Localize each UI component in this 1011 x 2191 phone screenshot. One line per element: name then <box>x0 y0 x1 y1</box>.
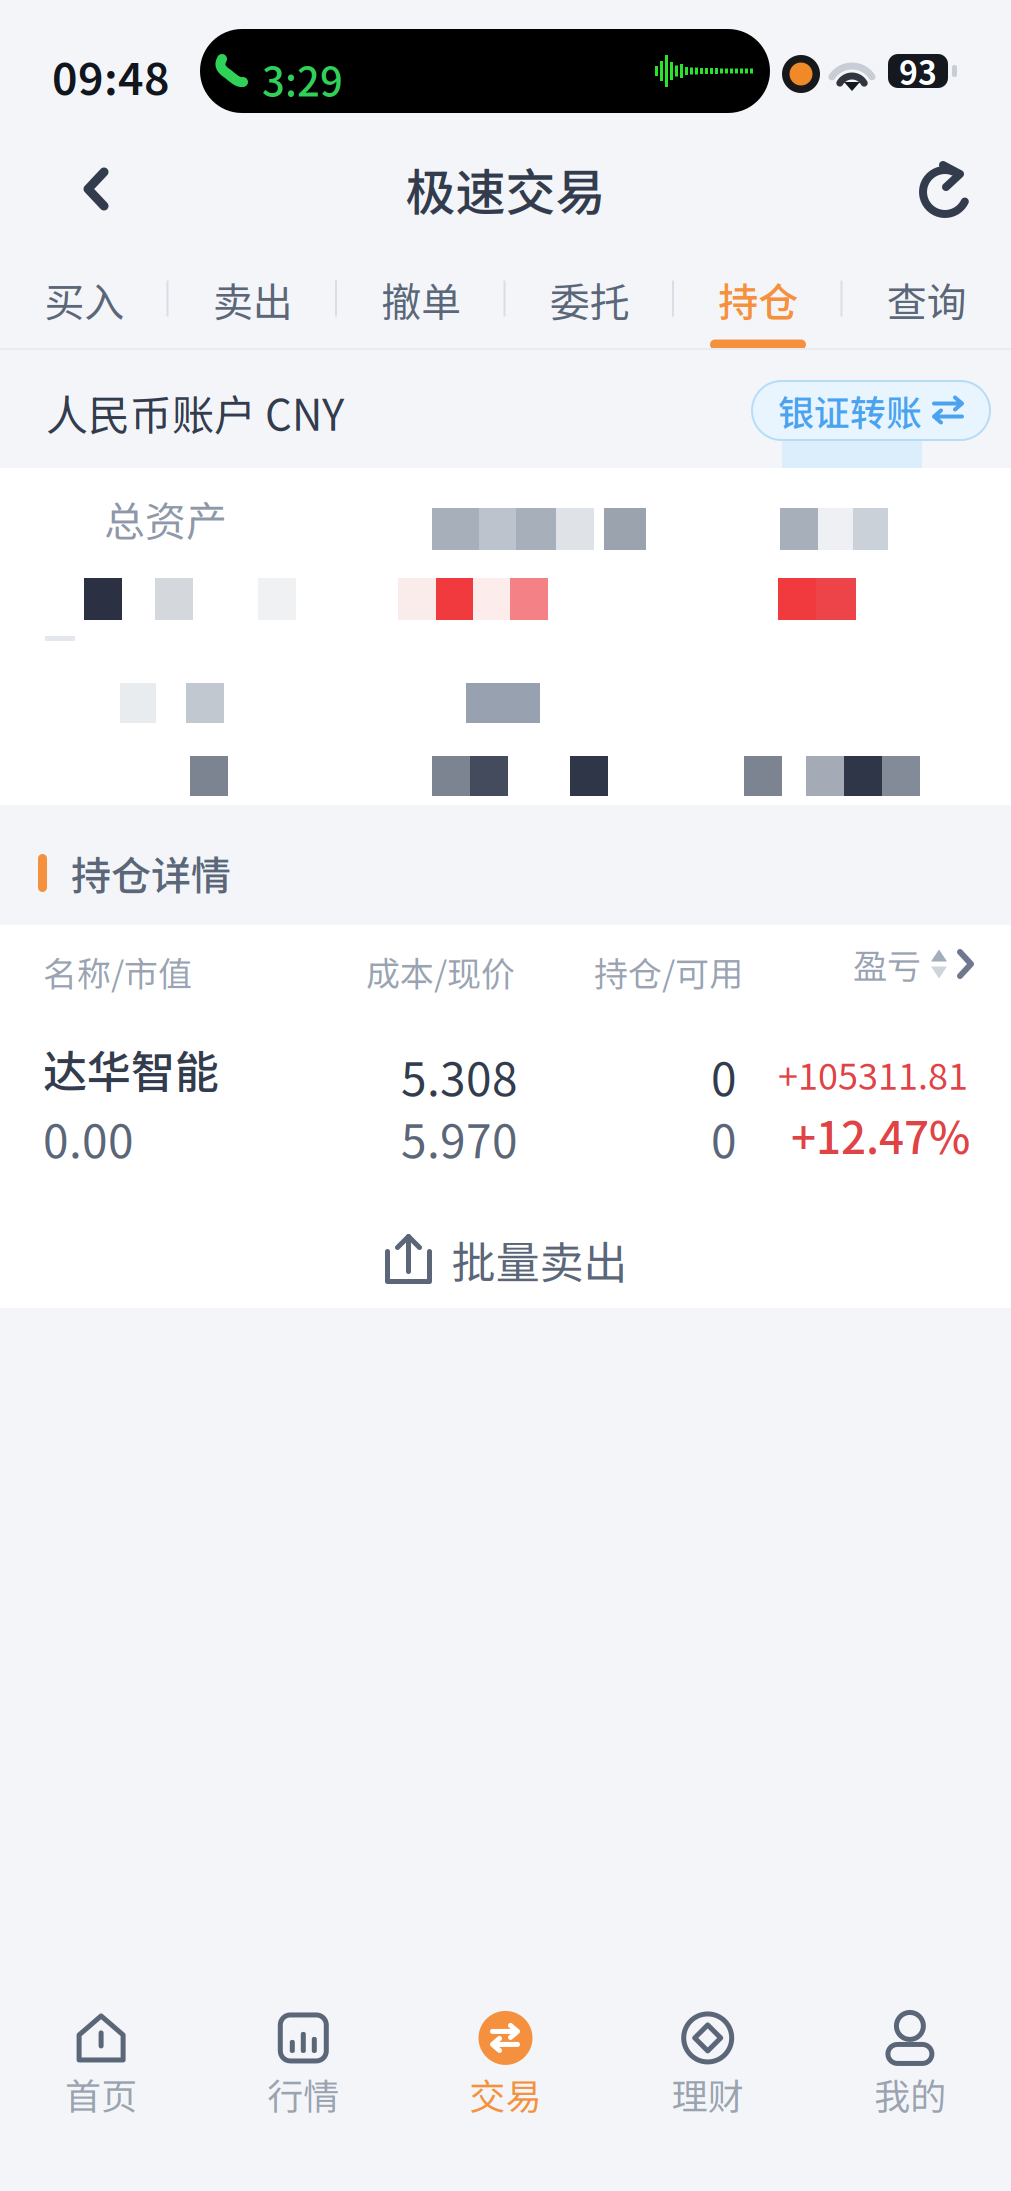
staticText: 名称/市值 <box>43 947 192 996</box>
staticText: 卖出 <box>213 270 293 328</box>
button[interactable]: 撤单 <box>337 257 505 339</box>
staticText: 买入 <box>44 270 124 328</box>
staticText: 总资产 <box>104 489 227 548</box>
staticText: 极速交易 <box>405 153 605 225</box>
button[interactable]: 买入 <box>0 257 168 339</box>
staticText: 5.970 <box>401 1105 518 1172</box>
staticText: 0 <box>711 1105 737 1172</box>
staticText: 交易 <box>469 2068 541 2120</box>
button[interactable]: 银证转账 <box>752 381 990 440</box>
staticText: 我的 <box>874 2068 946 2120</box>
button[interactable]: 行情 <box>202 1989 404 2141</box>
button[interactable]: Back <box>0 130 192 248</box>
staticText: 0.00 <box>43 1105 134 1172</box>
button[interactable]: Refresh <box>881 130 1011 248</box>
button[interactable]: 理财 <box>607 1989 809 2141</box>
staticText: 理财 <box>672 2068 744 2120</box>
button[interactable]: 查询 <box>842 257 1011 339</box>
staticText: +105311.81 <box>778 1048 968 1100</box>
staticText: 09:48 <box>52 44 170 108</box>
staticText: 持仓/可用 <box>594 947 743 996</box>
button[interactable]: 交易 <box>404 1989 607 2141</box>
staticText: 93 <box>899 48 937 94</box>
button[interactable]: 达华智能 <box>0 1021 1011 1211</box>
button[interactable]: 盈亏 <box>735 927 975 1001</box>
staticText: 持仓详情 <box>71 844 231 902</box>
button[interactable]: 批量卖出 <box>0 1211 1011 1308</box>
staticText: 0 <box>711 1043 737 1110</box>
staticText: 委托 <box>550 270 630 328</box>
button[interactable]: 首页 <box>0 1989 202 2141</box>
button[interactable]: 持仓 <box>674 257 842 339</box>
button[interactable]: 委托 <box>505 257 674 339</box>
staticText: 批量卖出 <box>451 1228 627 1291</box>
staticText: 行情 <box>267 2068 339 2120</box>
staticText: 5.308 <box>401 1043 518 1110</box>
staticText: 盈亏 <box>853 939 921 989</box>
staticText: 成本/现价 <box>366 947 515 996</box>
staticText: 3:29 <box>262 50 343 108</box>
staticText: 首页 <box>65 2068 137 2120</box>
staticText: 查询 <box>887 270 967 328</box>
staticText: 达华智能 <box>43 1037 219 1101</box>
staticText: 银证转账 <box>778 384 922 436</box>
button[interactable]: 我的 <box>809 1989 1011 2141</box>
staticText: 撤单 <box>381 270 461 328</box>
staticText: +12.47% <box>791 1103 970 1167</box>
staticText: 持仓 <box>718 270 798 328</box>
button[interactable]: 卖出 <box>168 257 337 339</box>
staticText: 人民币账户 CNY <box>46 382 344 443</box>
